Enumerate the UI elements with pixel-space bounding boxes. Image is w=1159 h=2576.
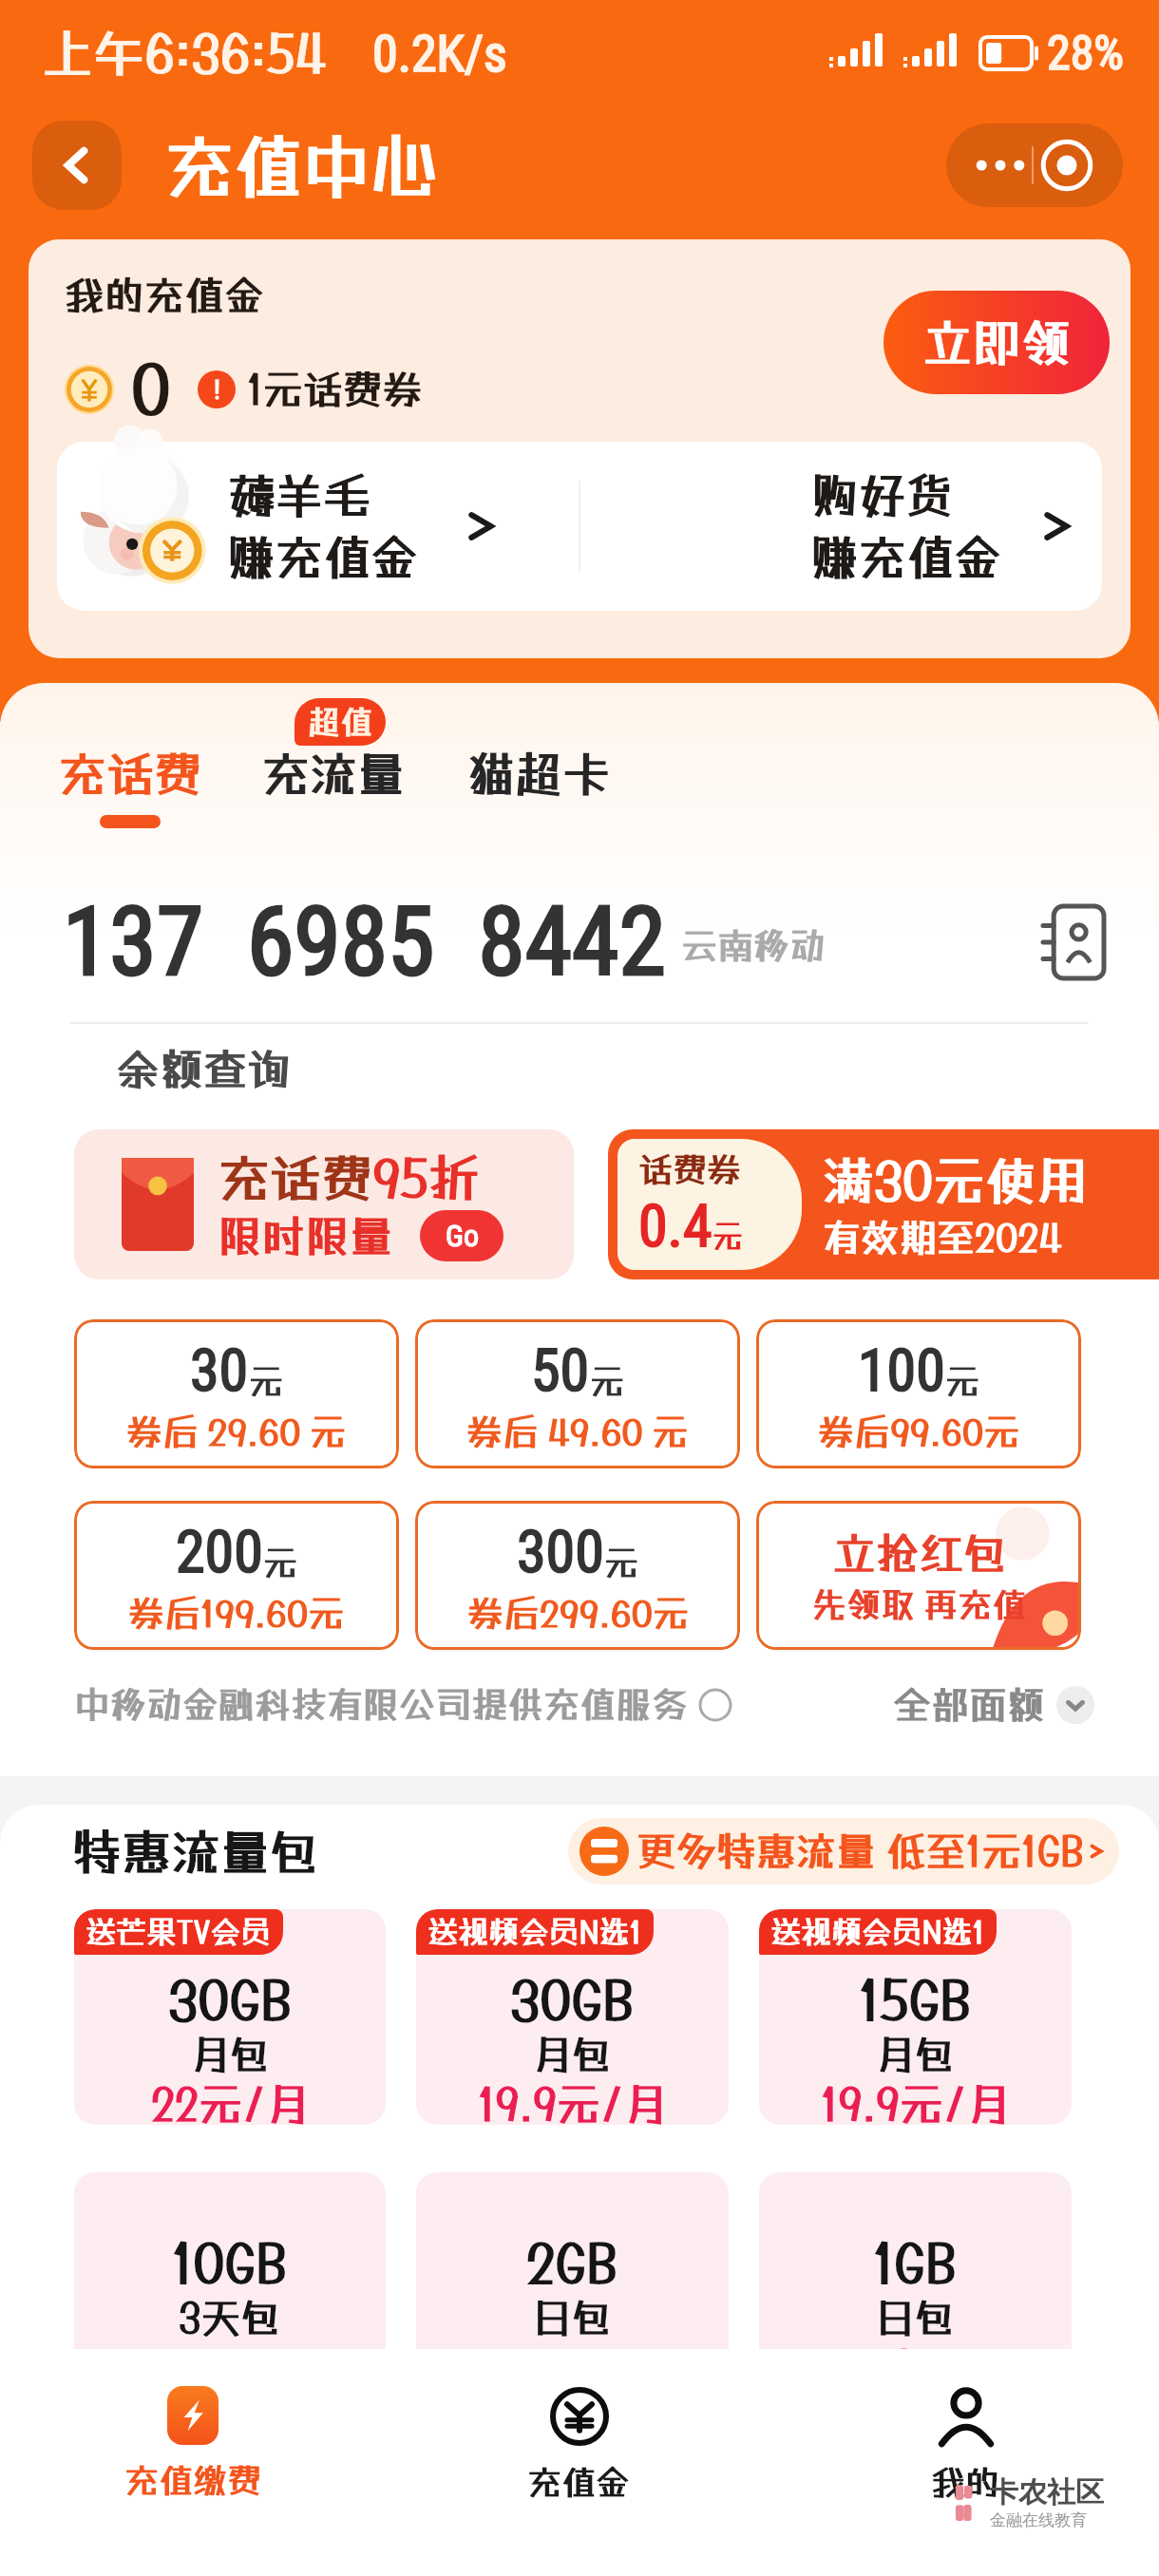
staticText: 月包 — [190, 2031, 271, 2078]
staticText: 赚充值金 — [811, 529, 1001, 585]
button[interactable]: More options — [946, 123, 1123, 207]
staticText: 我的 — [931, 2462, 1000, 2502]
button[interactable]: 充值缴费 — [0, 2349, 386, 2576]
button[interactable]: 300 — [415, 1501, 740, 1650]
staticText: 券后99.60元 — [818, 1411, 1020, 1453]
staticText: 猫超卡 — [467, 746, 610, 802]
button[interactable]: Back — [32, 121, 122, 210]
staticText: 购好货 — [811, 467, 954, 523]
button[interactable]: 2GB — [416, 2172, 729, 2388]
staticText: 立抢红包 — [832, 1527, 1007, 1579]
staticText: 超值 — [308, 703, 372, 741]
button[interactable]: 我的 — [772, 2349, 1159, 2576]
staticText: 95折 — [372, 1147, 480, 1208]
staticText: 余额查询 — [116, 1043, 291, 1094]
staticText: 元 — [945, 1361, 980, 1401]
staticText: 先领取 再充值 — [812, 1584, 1026, 1624]
staticText: 充话费 — [59, 746, 201, 802]
button[interactable]: 充话费 — [59, 746, 201, 828]
staticText: 我的充值金 — [65, 272, 265, 319]
staticText: 券后299.60元 — [467, 1592, 689, 1635]
staticText: 元 — [249, 1361, 284, 1401]
staticText: 3元 — [539, 2341, 607, 2388]
button[interactable]: 送视频会员N选1 — [416, 1909, 729, 2125]
button[interactable]: 立抢红包 — [756, 1501, 1081, 1650]
staticText: ! — [214, 374, 220, 406]
staticText: 3天包 — [179, 2294, 281, 2341]
button[interactable]: 1GB — [759, 2172, 1072, 2388]
staticText: 元 — [590, 1361, 625, 1401]
staticText: 19.9元/月 — [821, 2078, 1011, 2125]
staticText: 充流量 — [262, 746, 405, 802]
button[interactable]: 50 — [415, 1319, 740, 1468]
staticText: 更多特惠流量 低至1元1GB — [636, 1828, 1085, 1875]
button[interactable]: Contacts — [1041, 906, 1104, 978]
staticText: 赚充值金 — [228, 529, 418, 585]
staticText: 满30元使用 — [823, 1150, 1088, 1211]
staticText: 50 — [531, 1335, 590, 1405]
staticText: 立即领 — [922, 313, 1072, 371]
staticText: 充值金 — [527, 2462, 631, 2502]
staticText: 金融在线教育 — [990, 2510, 1087, 2530]
staticText: 日包 — [532, 2294, 613, 2341]
staticText: 充值缴费 — [124, 2460, 262, 2500]
staticText: 9.9元 — [178, 2341, 283, 2388]
staticText: 10GB — [172, 2231, 288, 2294]
staticText: 送视频会员N选1 — [770, 1914, 985, 1950]
staticText: 限时限量 — [218, 1210, 393, 1261]
button[interactable]: 购好货 — [580, 442, 1102, 611]
staticText: 2GB — [526, 2231, 618, 2294]
staticText: 1.5元 — [866, 2341, 965, 2388]
button[interactable]: 送视频会员N选1 — [759, 1909, 1072, 2125]
staticText: 月包 — [875, 2031, 956, 2078]
staticText: 券后 29.60 元 — [126, 1411, 347, 1453]
staticText: 30GB — [510, 1968, 635, 2031]
staticText: 特惠流量包 — [72, 1823, 320, 1881]
button[interactable]: 200 — [74, 1501, 399, 1650]
staticText: 中移动金融科技有限公司提供充值服务 — [74, 1683, 689, 1726]
button[interactable]: 立即领 — [883, 291, 1110, 394]
button[interactable]: 100 — [756, 1319, 1081, 1468]
button[interactable]: 30 — [74, 1319, 399, 1468]
staticText: 0.4 — [638, 1191, 712, 1260]
staticText: 券后199.60元 — [128, 1592, 345, 1635]
staticText: 15GB — [859, 1968, 972, 2031]
staticText: 19.9元/月 — [478, 2078, 668, 2125]
button[interactable]: 全部面额 — [893, 1682, 1094, 1727]
staticText: 元 — [263, 1543, 298, 1582]
button[interactable]: 充流量 — [262, 746, 405, 828]
button[interactable]: 更多特惠流量 低至1元1GB — [568, 1818, 1119, 1885]
staticText: 有效期至2024 — [823, 1215, 1062, 1260]
staticText: 卡农社区 — [990, 2474, 1104, 2510]
staticText: 全部面额 — [893, 1682, 1045, 1727]
staticText: 28% — [1047, 26, 1125, 82]
staticText: 云南移动 — [681, 924, 826, 967]
staticText: 1GB — [873, 2231, 958, 2294]
staticText: 券后 49.60 元 — [466, 1411, 689, 1453]
staticText: 送芒果TV会员 — [85, 1914, 272, 1950]
staticText: 日包 — [875, 2294, 956, 2341]
staticText: 300 — [517, 1517, 604, 1586]
button[interactable]: 薅羊毛 — [57, 442, 579, 611]
staticText: 元 — [604, 1543, 639, 1582]
staticText: 充值中心 — [165, 125, 440, 206]
staticText: 元 — [712, 1219, 744, 1255]
staticText: 30 — [190, 1335, 249, 1405]
staticText: 0.2K/s — [372, 24, 507, 84]
staticText: 200 — [176, 1517, 263, 1586]
staticText: 100 — [858, 1335, 945, 1405]
staticText: 上午6:36:54 — [42, 23, 327, 84]
button[interactable]: 送芒果TV会员 — [74, 1909, 386, 2125]
button[interactable]: 猫超卡 — [467, 746, 610, 828]
staticText: 话费券 — [638, 1149, 742, 1189]
button[interactable]: 话费券 — [608, 1129, 1159, 1279]
staticText: 送视频会员N选1 — [427, 1914, 642, 1950]
staticText: 充话费 — [218, 1147, 372, 1208]
button[interactable]: 10GB — [74, 2172, 386, 2388]
staticText: 22元/月 — [151, 2078, 310, 2125]
button[interactable]: 充话费 — [74, 1129, 574, 1279]
staticText: 1元话费券 — [247, 366, 423, 413]
button[interactable]: 充值金 — [386, 2349, 772, 2576]
staticText: 月包 — [532, 2031, 613, 2078]
staticText: 薅羊毛 — [228, 467, 370, 523]
